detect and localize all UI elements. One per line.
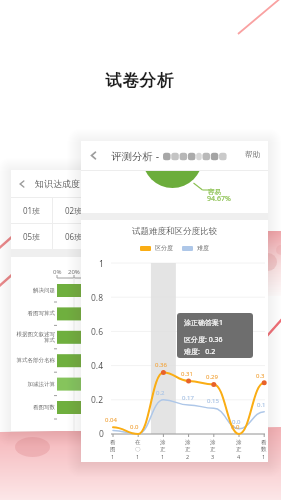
staticText: 正 bbox=[185, 446, 191, 453]
staticText: 1 bbox=[136, 453, 140, 460]
staticText: 94.67% bbox=[207, 194, 231, 204]
button[interactable]: 05班 bbox=[11, 224, 52, 249]
staticText: 根据图文叙述写 算式 bbox=[16, 331, 55, 344]
staticText: 知识达成度 bbox=[35, 178, 80, 189]
staticText: 0.36 bbox=[155, 361, 167, 369]
button[interactable]: 02班 bbox=[53, 198, 95, 223]
staticText: 区分度 bbox=[155, 244, 173, 252]
staticText: 0 bbox=[99, 428, 104, 439]
staticText: 试题难度和区分度比较 bbox=[132, 226, 217, 237]
staticText: 0.0 bbox=[130, 423, 139, 431]
staticText: 涂 bbox=[160, 439, 166, 446]
staticText: 〇 bbox=[135, 446, 141, 453]
staticText: 解决问题 bbox=[33, 287, 55, 294]
staticText: 区分度: 0.36 bbox=[184, 335, 223, 345]
other: Back bbox=[17, 179, 27, 189]
staticText: 1 bbox=[99, 258, 104, 269]
staticText: 试卷分析 bbox=[105, 70, 175, 91]
staticText: 正 bbox=[210, 446, 216, 453]
staticText: 05班 bbox=[23, 231, 41, 242]
button[interactable]: 06班 bbox=[53, 224, 95, 249]
button[interactable]: 01班 bbox=[11, 198, 52, 223]
staticText: 难度: 0.2 bbox=[184, 347, 216, 357]
staticText: 评测分析 - bbox=[111, 149, 160, 163]
staticText: 看 bbox=[110, 439, 116, 446]
staticText: 0.2 bbox=[156, 389, 165, 397]
staticText: 0.4 bbox=[91, 360, 104, 371]
staticText: 0.8 bbox=[91, 292, 104, 303]
staticText: 容易 bbox=[208, 188, 221, 196]
staticText: 加减法计算 bbox=[27, 381, 55, 388]
button[interactable]: Back bbox=[11, 170, 95, 197]
staticText: 0.3 bbox=[256, 372, 265, 380]
staticText: 算式各部分名称 bbox=[16, 357, 55, 364]
staticText: 06班 bbox=[65, 231, 83, 242]
staticText: 涂 bbox=[236, 439, 242, 446]
staticText: 0.0 bbox=[231, 423, 240, 431]
staticText: 0.17 bbox=[182, 394, 194, 402]
staticText: 20% bbox=[68, 268, 80, 276]
staticText: 0.6 bbox=[91, 326, 104, 337]
staticText: 0.29 bbox=[206, 373, 218, 381]
staticText: 0.15 bbox=[207, 397, 219, 405]
staticText: 1 bbox=[161, 453, 165, 460]
staticText: 3 bbox=[211, 453, 215, 460]
staticText: 4 bbox=[237, 453, 241, 460]
staticText: 0.1 bbox=[257, 401, 266, 409]
staticText: 01班 bbox=[23, 205, 41, 216]
staticText: 在 bbox=[135, 439, 141, 446]
staticText: 看图写算式 bbox=[27, 310, 55, 317]
staticText: 2 bbox=[186, 453, 190, 460]
staticText: 0.31 bbox=[181, 370, 193, 378]
button[interactable]: Back bbox=[87, 149, 100, 162]
button[interactable]: 帮助 bbox=[239, 146, 266, 163]
staticText: 看 bbox=[261, 439, 267, 446]
staticText: 帮助 bbox=[245, 150, 260, 159]
staticText: 涂正确答案1 bbox=[184, 318, 224, 328]
staticText: 0.0 bbox=[232, 418, 241, 426]
staticText: 涂 bbox=[210, 439, 216, 446]
staticText: 数 bbox=[261, 446, 267, 453]
staticText: 0.2 bbox=[91, 394, 104, 405]
staticText: 正 bbox=[236, 446, 242, 453]
staticText: 0.04 bbox=[105, 416, 117, 424]
staticText: 1 bbox=[262, 453, 266, 460]
staticText: 正 bbox=[160, 446, 166, 453]
staticText: 图 bbox=[110, 446, 116, 453]
staticText: 难度 bbox=[197, 244, 209, 252]
staticText: 1 bbox=[111, 453, 115, 460]
staticText: 看图写数 bbox=[33, 404, 55, 411]
staticText: 02班 bbox=[65, 205, 83, 216]
staticText: 涂 bbox=[185, 439, 191, 446]
staticText: 0% bbox=[53, 268, 62, 276]
